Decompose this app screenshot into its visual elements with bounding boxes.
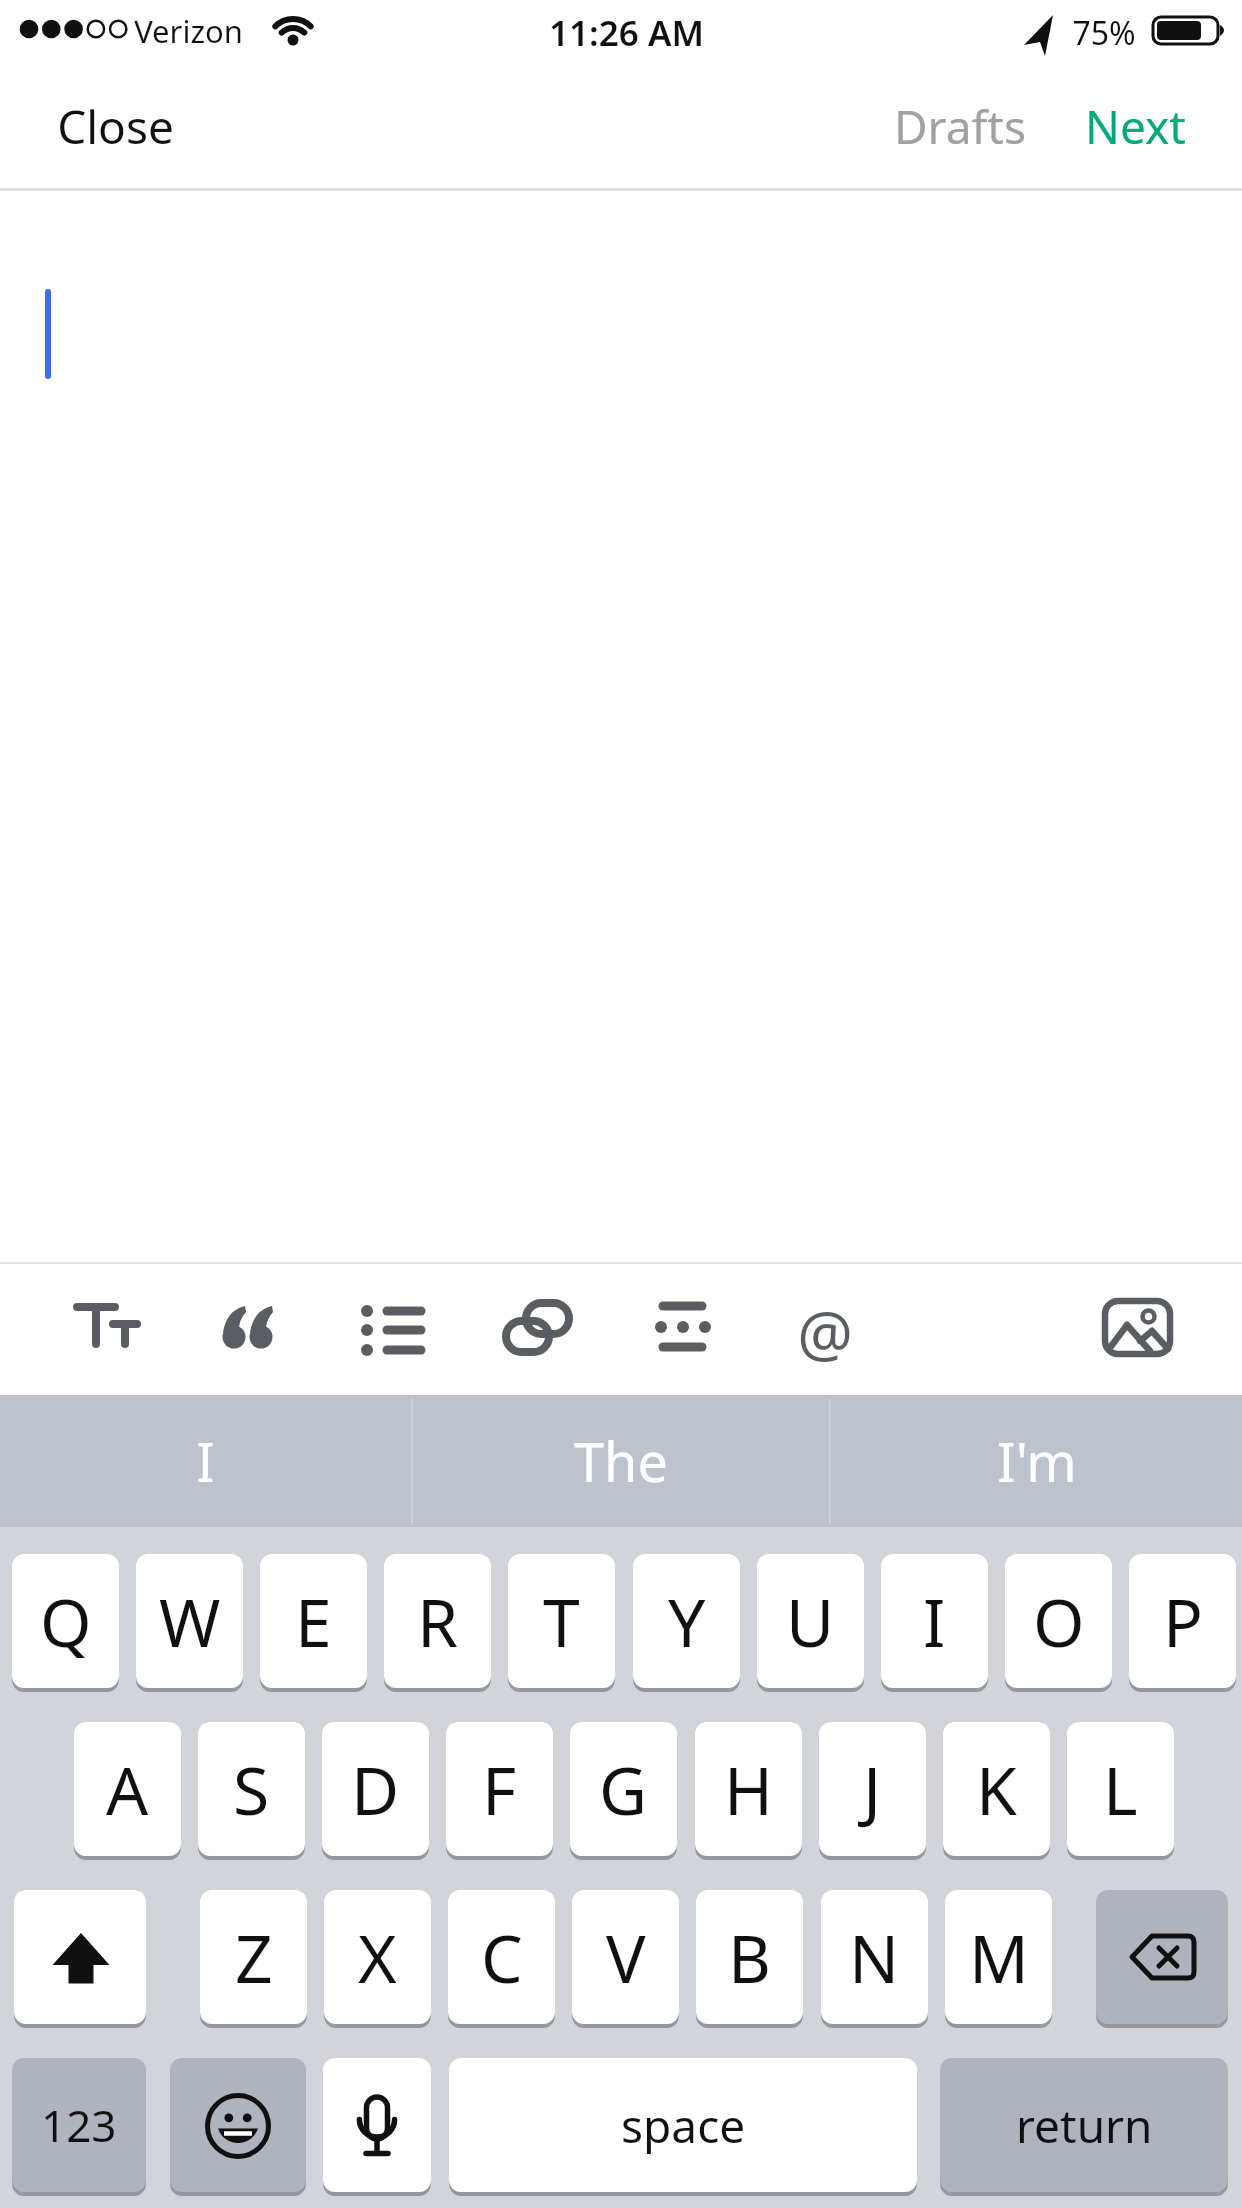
staticText: T xyxy=(543,1576,580,1666)
button[interactable]: Y xyxy=(633,1554,740,1688)
button[interactable]: I'm xyxy=(831,1395,1242,1527)
button[interactable]: return xyxy=(940,2058,1228,2192)
staticText: O xyxy=(1033,1576,1085,1666)
staticText: The xyxy=(574,1424,668,1498)
button[interactable]: J xyxy=(819,1722,926,1856)
button[interactable]: Z xyxy=(200,1890,307,2024)
staticText: space xyxy=(621,2094,746,2157)
staticText: K xyxy=(976,1744,1017,1834)
button[interactable]: R xyxy=(384,1554,491,1688)
button[interactable]: 123 xyxy=(12,2058,146,2192)
staticText: Verizon xyxy=(134,10,243,50)
button[interactable]: Drafts xyxy=(880,95,1040,157)
button[interactable]: G xyxy=(570,1722,677,1856)
staticText: D xyxy=(351,1744,400,1834)
button[interactable]: P xyxy=(1129,1554,1236,1688)
button[interactable]: Close xyxy=(57,95,237,157)
button[interactable]: C xyxy=(448,1890,555,2024)
button[interactable]: F xyxy=(446,1722,553,1856)
button[interactable]: E xyxy=(260,1554,367,1688)
staticText: C xyxy=(481,1912,523,2002)
button[interactable] xyxy=(1096,1890,1228,2024)
staticText: 75% xyxy=(1072,11,1136,51)
button[interactable]: H xyxy=(695,1722,802,1856)
button[interactable]: D xyxy=(322,1722,429,1856)
staticText: A xyxy=(106,1744,149,1834)
button[interactable] xyxy=(170,2058,306,2192)
staticText: Y xyxy=(668,1576,706,1666)
button[interactable]: space xyxy=(449,2058,917,2192)
staticText: I xyxy=(196,1424,215,1498)
button[interactable] xyxy=(481,1275,591,1385)
staticText: X xyxy=(358,1912,397,2002)
button[interactable]: W xyxy=(136,1554,243,1688)
staticText: F xyxy=(482,1744,517,1834)
button[interactable]: K xyxy=(943,1722,1050,1856)
button[interactable] xyxy=(1082,1275,1192,1385)
button[interactable]: N xyxy=(821,1890,928,2024)
staticText: Close xyxy=(57,95,174,157)
staticText: J xyxy=(863,1744,882,1834)
button[interactable]: Q xyxy=(12,1554,119,1688)
staticText: 123 xyxy=(41,2095,117,2155)
button[interactable]: U xyxy=(757,1554,864,1688)
button[interactable]: L xyxy=(1067,1722,1174,1856)
staticText: R xyxy=(417,1576,459,1666)
button[interactable]: X xyxy=(324,1890,431,2024)
button[interactable]: V xyxy=(572,1890,679,2024)
staticText: M xyxy=(969,1912,1029,2002)
button[interactable] xyxy=(628,1275,738,1385)
staticText: Z xyxy=(235,1912,273,2002)
button[interactable] xyxy=(323,2058,431,2192)
staticText: Next xyxy=(1085,95,1186,157)
staticText: return xyxy=(1016,2094,1153,2157)
staticText: U xyxy=(786,1576,835,1666)
button[interactable] xyxy=(53,1275,163,1385)
staticText: B xyxy=(728,1912,771,2002)
staticText: H xyxy=(724,1744,773,1834)
button[interactable]: B xyxy=(696,1890,803,2024)
staticText: P xyxy=(1163,1576,1203,1666)
staticText: W xyxy=(159,1576,221,1666)
staticText: Q xyxy=(40,1576,92,1666)
button[interactable]: T xyxy=(508,1554,615,1688)
staticText: G xyxy=(599,1744,648,1834)
staticText: @ xyxy=(797,1290,853,1370)
staticText: E xyxy=(295,1576,332,1666)
button[interactable]: I xyxy=(881,1554,988,1688)
staticText: V xyxy=(606,1912,646,2002)
button[interactable] xyxy=(770,1275,880,1385)
button[interactable] xyxy=(337,1275,447,1385)
staticText: Drafts xyxy=(894,95,1026,157)
button[interactable]: The xyxy=(413,1395,829,1527)
button[interactable]: O xyxy=(1005,1554,1112,1688)
button[interactable]: M xyxy=(945,1890,1052,2024)
button[interactable]: S xyxy=(198,1722,305,1856)
button[interactable]: A xyxy=(74,1722,181,1856)
staticText: 11:26 AM xyxy=(549,9,704,51)
button[interactable]: I xyxy=(0,1395,411,1527)
button[interactable] xyxy=(195,1275,305,1385)
button[interactable]: Next xyxy=(1070,95,1200,157)
staticText: N xyxy=(849,1912,900,2002)
staticText: L xyxy=(1103,1744,1138,1834)
staticText: I xyxy=(923,1576,946,1666)
button[interactable] xyxy=(14,1890,146,2024)
staticText: S xyxy=(233,1744,270,1834)
staticText: I'm xyxy=(997,1424,1077,1498)
